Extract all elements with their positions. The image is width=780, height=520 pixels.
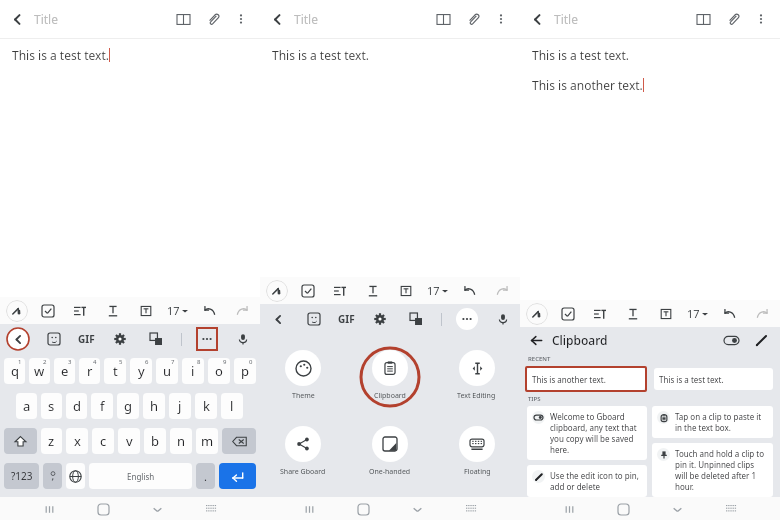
button[interactable]: Sticker [303,308,325,330]
button[interactable]: . [196,463,215,489]
button[interactable]: Hide keyboard [406,498,428,520]
button[interactable]: Clipboard [368,346,412,405]
button[interactable]: n [170,428,192,454]
button[interactable]: Text box [134,299,158,323]
button[interactable]: Checklist [36,299,60,323]
button[interactable]: Text format [361,279,385,303]
button[interactable] [222,428,256,454]
button[interactable]: x [66,428,88,454]
button[interactable]: Reading mode [428,4,458,34]
button[interactable]: Hide keyboard [666,498,688,520]
button[interactable]: 17 [427,283,448,298]
button[interactable] [43,463,62,489]
button[interactable]: k [195,393,217,419]
button[interactable]: l [221,393,243,419]
button[interactable]: Recent apps [558,498,580,520]
button[interactable]: One-handed [365,422,415,481]
button[interactable]: Floating [455,422,499,481]
button[interactable]: Toggle clipboard [720,329,742,351]
button[interactable]: 17 [167,303,188,318]
button[interactable]: j [169,393,191,419]
button[interactable]: a [16,393,37,419]
button[interactable]: Hide keyboard [146,498,168,520]
button[interactable]: b [144,428,166,454]
button[interactable]: Reading mode [168,4,198,34]
button[interactable]: o [208,358,230,384]
button[interactable]: h [143,393,165,419]
button[interactable]: Back [526,330,546,350]
button[interactable]: More options [748,6,774,32]
button[interactable]: More options [228,6,254,32]
button[interactable] [219,463,256,489]
button[interactable]: Translate [145,328,167,350]
button[interactable]: GIF [338,312,355,326]
button[interactable]: m [196,428,218,454]
button[interactable]: f [91,393,113,419]
button[interactable]: r [79,358,100,384]
button[interactable]: Gboard [266,280,288,302]
button[interactable]: Sticker [43,328,65,350]
button[interactable]: u [156,358,178,384]
button[interactable]: Keyboard [460,498,482,520]
button[interactable]: ?123 [4,463,39,489]
button[interactable]: Gboard [526,303,548,325]
button[interactable]: Text Editing [453,346,500,405]
button[interactable]: Text box [394,279,418,303]
button[interactable]: Undo [717,302,741,326]
button[interactable]: Recent apps [38,498,60,520]
button[interactable]: w [29,358,50,384]
button[interactable]: Back [520,2,554,36]
button[interactable] [66,463,85,489]
button[interactable]: Keyboard [720,498,742,520]
button[interactable]: p [234,358,256,384]
button[interactable]: y [130,358,152,384]
button[interactable]: More options [488,6,514,32]
button[interactable]: Back [266,307,290,331]
button[interactable]: English [89,463,192,489]
button[interactable]: Checklist [556,302,580,326]
button[interactable]: z [41,428,62,454]
button[interactable]: Back [6,327,30,351]
button[interactable]: Recent apps [298,498,320,520]
button[interactable]: Home [612,498,634,520]
button[interactable]: Translate [405,308,427,330]
button[interactable]: Use the edit icon to pin, add or delete [527,465,647,497]
button[interactable]: Redo [490,279,514,303]
button[interactable]: v [118,428,140,454]
button[interactable]: Undo [197,299,221,323]
button[interactable]: Text format [101,299,125,323]
button[interactable]: Attach [718,4,748,34]
button[interactable]: Attach [458,4,488,34]
button[interactable]: Attach [198,4,228,34]
button[interactable]: Undo [457,279,481,303]
button[interactable]: Paragraph [588,302,612,326]
button[interactable]: Home [352,498,374,520]
button[interactable]: Checklist [296,279,320,303]
button[interactable]: Voice input [492,308,514,330]
button[interactable]: Keyboard [200,498,222,520]
button[interactable]: Theme [281,346,325,405]
button[interactable]: i [182,358,204,384]
button[interactable]: g [117,393,139,419]
button[interactable]: Back [0,2,34,36]
button[interactable]: More [456,307,478,331]
button[interactable]: Tap on a clip to paste it in the text bo… [652,406,773,438]
button[interactable]: Voice input [232,328,254,350]
button[interactable]: Settings [369,308,391,330]
button[interactable]: GIF [78,332,95,346]
button[interactable]: Share Gboard [276,422,330,481]
button[interactable]: Back [260,2,294,36]
button[interactable] [4,428,37,454]
button[interactable]: Home [92,498,114,520]
button[interactable]: Settings [109,328,131,350]
button[interactable]: Paragraph [68,299,92,323]
button[interactable]: Reading mode [688,4,718,34]
button[interactable]: s [41,393,62,419]
button[interactable]: 17 [687,306,708,321]
button[interactable]: Edit [750,329,772,351]
button[interactable]: More [196,327,218,351]
button[interactable]: q [4,358,25,384]
button[interactable]: Welcome to Gboard clipboard, any text th… [527,406,647,460]
button[interactable]: t [104,358,126,384]
button[interactable]: This is another text. [527,368,645,390]
